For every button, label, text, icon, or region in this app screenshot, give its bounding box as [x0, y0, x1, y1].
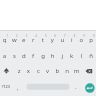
button[interactable] [72, 64, 82, 80]
button[interactable] [10, 48, 20, 64]
button[interactable] [67, 32, 77, 48]
button[interactable] [48, 48, 58, 64]
button[interactable] [38, 48, 48, 64]
button[interactable] [24, 64, 34, 80]
button[interactable] [10, 32, 20, 48]
button[interactable] [77, 32, 87, 48]
button[interactable] [82, 80, 96, 96]
button[interactable] [19, 32, 29, 48]
button[interactable] [48, 32, 58, 48]
button[interactable] [53, 64, 63, 80]
button[interactable] [24, 80, 72, 96]
button[interactable] [77, 48, 87, 64]
button[interactable] [0, 48, 10, 64]
button[interactable] [62, 64, 72, 80]
button[interactable] [0, 32, 10, 48]
button[interactable] [72, 80, 82, 96]
button[interactable] [67, 48, 77, 64]
button[interactable] [86, 32, 96, 48]
button[interactable] [0, 64, 14, 80]
button[interactable] [82, 64, 96, 80]
button[interactable] [29, 32, 39, 48]
button[interactable] [14, 64, 24, 80]
button[interactable] [58, 32, 68, 48]
button[interactable] [29, 48, 39, 64]
button[interactable] [43, 64, 53, 80]
button[interactable] [0, 80, 14, 96]
button[interactable] [34, 64, 44, 80]
button[interactable] [38, 32, 48, 48]
button[interactable] [86, 48, 96, 64]
button[interactable] [14, 80, 24, 96]
button[interactable] [19, 48, 29, 64]
button[interactable] [58, 48, 68, 64]
